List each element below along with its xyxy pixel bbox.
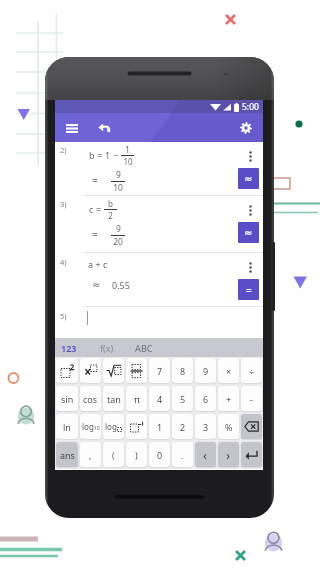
button[interactable]: 4 bbox=[149, 386, 170, 411]
button[interactable]: Evaluate bbox=[238, 168, 259, 189]
button[interactable]: % bbox=[218, 414, 239, 439]
staticText: 0.55 bbox=[112, 279, 130, 291]
button[interactable]: 7 bbox=[149, 358, 170, 383]
button[interactable]: 1 bbox=[149, 414, 170, 439]
staticText: 4) bbox=[60, 257, 67, 267]
staticText: 10 bbox=[113, 182, 123, 191]
staticText: log bbox=[82, 421, 94, 432]
button[interactable]: , bbox=[80, 442, 101, 467]
staticText: cos bbox=[83, 393, 98, 405]
button[interactable]: More options bbox=[242, 148, 258, 164]
staticText: 5) bbox=[60, 311, 67, 321]
button[interactable]: Evaluate bbox=[238, 279, 259, 300]
button[interactable]: Undo bbox=[93, 117, 115, 139]
button[interactable]: Square root bbox=[103, 358, 124, 383]
staticText: 10 bbox=[123, 156, 133, 166]
button[interactable]: 6 bbox=[195, 386, 216, 411]
button[interactable]: . bbox=[172, 442, 193, 467]
button[interactable]: 123 bbox=[57, 339, 81, 357]
staticText: 8 bbox=[180, 365, 186, 377]
button[interactable]: Log base 10 bbox=[80, 414, 101, 439]
staticText: 5 bbox=[180, 393, 186, 405]
button[interactable]: tan bbox=[103, 386, 124, 411]
staticText: = bbox=[96, 203, 102, 215]
staticText: a + c bbox=[88, 258, 108, 270]
staticText: › bbox=[226, 446, 231, 464]
staticText: 10 bbox=[94, 425, 100, 432]
staticText: ≈ bbox=[244, 173, 253, 185]
staticText: × bbox=[226, 365, 232, 377]
button[interactable]: Enter bbox=[241, 442, 262, 467]
staticText: 9 bbox=[203, 365, 209, 377]
staticText: 9 bbox=[116, 223, 121, 235]
button[interactable]: sin bbox=[56, 386, 78, 411]
button[interactable]: 2) bbox=[55, 142, 263, 196]
button[interactable]: Settings bbox=[235, 117, 257, 139]
button[interactable]: - bbox=[241, 386, 262, 411]
button[interactable]: Move right bbox=[218, 442, 239, 467]
button[interactable]: ans bbox=[56, 442, 78, 467]
button[interactable]: Fraction bbox=[126, 358, 147, 383]
staticText: 5:00 bbox=[242, 101, 259, 113]
staticText: tan bbox=[107, 393, 121, 405]
button[interactable]: π bbox=[126, 386, 147, 411]
button[interactable]: More options bbox=[242, 202, 258, 218]
staticText: 3) bbox=[60, 199, 67, 209]
button[interactable]: + bbox=[218, 386, 239, 411]
button[interactable]: 5) bbox=[55, 307, 263, 338]
button[interactable]: Power bbox=[80, 358, 101, 383]
staticText: 4 bbox=[157, 393, 163, 405]
staticText: ‹ bbox=[203, 446, 208, 464]
button[interactable]: More options bbox=[242, 259, 258, 275]
button[interactable]: 4) bbox=[55, 253, 263, 307]
staticText: + bbox=[226, 393, 232, 405]
button[interactable]: ( bbox=[103, 442, 124, 467]
staticText: 2 bbox=[180, 421, 186, 433]
staticText: ans bbox=[60, 449, 75, 461]
staticText: % bbox=[225, 421, 233, 433]
button[interactable]: 8 bbox=[172, 358, 193, 383]
staticText: - bbox=[250, 393, 253, 405]
staticText: = bbox=[246, 283, 252, 297]
staticText: 7 bbox=[157, 365, 163, 377]
staticText: log bbox=[105, 421, 117, 432]
staticText: ≈ bbox=[92, 279, 101, 291]
button[interactable]: f(x) bbox=[96, 339, 118, 357]
button[interactable]: × bbox=[218, 358, 239, 383]
staticText: = bbox=[92, 173, 98, 187]
button[interactable]: 2 bbox=[172, 414, 193, 439]
staticText: 3 bbox=[203, 421, 209, 433]
staticText: b bbox=[108, 198, 113, 209]
staticText: 2 bbox=[108, 210, 113, 220]
button[interactable]: ln bbox=[56, 414, 78, 439]
staticText: ≈ bbox=[244, 227, 253, 239]
staticText: ÷ bbox=[249, 365, 255, 377]
staticText: π bbox=[134, 393, 140, 405]
button[interactable]: Log base bbox=[103, 414, 124, 439]
button[interactable]: 0 bbox=[149, 442, 170, 467]
button[interactable]: Move left bbox=[195, 442, 216, 467]
staticText: 0 bbox=[157, 449, 163, 461]
staticText: 1 bbox=[105, 149, 111, 161]
button[interactable]: 3 bbox=[195, 414, 216, 439]
staticText: = bbox=[92, 227, 98, 241]
staticText: c bbox=[89, 203, 94, 215]
button[interactable]: Evaluate bbox=[238, 222, 259, 243]
button[interactable]: 5 bbox=[172, 386, 193, 411]
button[interactable]: 9 bbox=[195, 358, 216, 383]
staticText: ln bbox=[63, 421, 71, 433]
button[interactable]: ÷ bbox=[241, 358, 262, 383]
button[interactable]: Inverse bbox=[126, 414, 147, 439]
staticText: 20 bbox=[113, 236, 123, 245]
button[interactable]: Backspace bbox=[241, 414, 262, 439]
button[interactable]: Square bbox=[56, 358, 78, 383]
button[interactable]: Menu bbox=[61, 117, 83, 139]
button[interactable]: cos bbox=[80, 386, 101, 411]
staticText: 1 bbox=[157, 421, 163, 433]
staticText: 6 bbox=[203, 393, 209, 405]
staticText: , bbox=[89, 449, 92, 461]
staticText: 9 bbox=[116, 169, 121, 181]
button[interactable]: ) bbox=[126, 442, 147, 467]
button[interactable]: ABC bbox=[131, 339, 157, 357]
button[interactable]: 3) bbox=[55, 196, 263, 253]
